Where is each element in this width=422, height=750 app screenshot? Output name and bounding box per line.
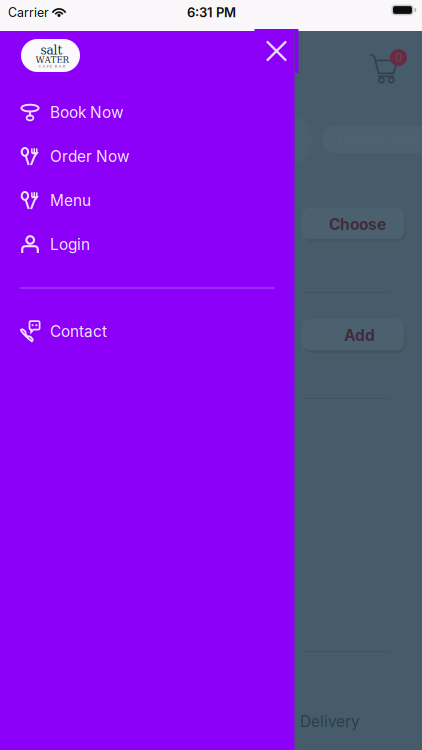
staticText: Add (344, 326, 375, 345)
staticText: salt (40, 43, 62, 57)
staticText: C A F E B A R (38, 64, 65, 68)
staticText: Carrier (8, 5, 49, 20)
staticText: 6:31 PM (187, 5, 236, 20)
button[interactable]: Book Now (0, 90, 295, 134)
staticText: Login (50, 235, 90, 254)
button[interactable]: Menu (0, 178, 295, 222)
staticText: WATER (35, 55, 69, 65)
button[interactable]: Close menu (254, 29, 298, 73)
staticText: 0 (395, 51, 402, 64)
staticText: Menu (50, 191, 91, 210)
staticText: Contact (50, 322, 107, 341)
staticText: Choose (329, 215, 386, 234)
staticText: Order Now (50, 147, 130, 166)
button[interactable]: Order Now (0, 134, 295, 178)
button[interactable]: Contact (0, 309, 295, 353)
staticText: Book Now (50, 103, 124, 122)
button[interactable]: Login (0, 222, 295, 266)
staticText: Delivery (300, 712, 360, 731)
